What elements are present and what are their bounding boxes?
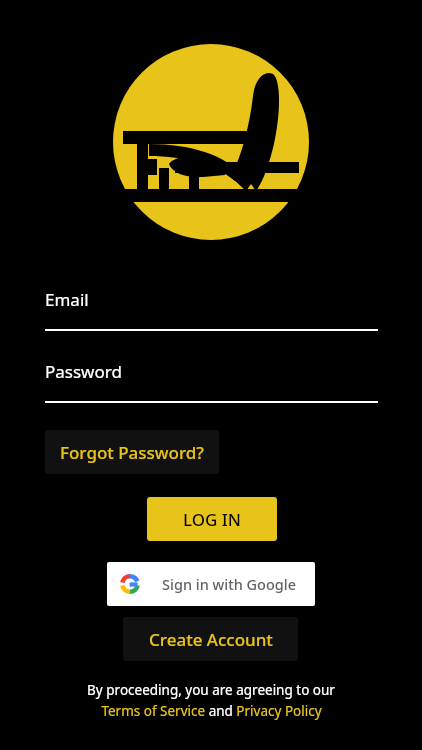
button[interactable]: Create Account [123, 617, 298, 661]
staticText: Sign in with Google [162, 574, 297, 594]
button[interactable]: LOG IN [147, 497, 277, 541]
staticText: Password [45, 360, 122, 383]
button[interactable]: Sign in with Google [107, 562, 315, 606]
button[interactable]: Forgot Password? [45, 430, 219, 474]
staticText: LOG IN [183, 508, 242, 531]
staticText: Create Account [149, 628, 273, 651]
button[interactable]: Password [45, 360, 378, 402]
button[interactable]: Terms of Service and Privacy Policy [101, 702, 322, 720]
button[interactable]: Email [45, 288, 378, 330]
staticText: By proceeding, you are agreeing to our [87, 681, 335, 699]
staticText: Forgot Password? [60, 441, 204, 464]
staticText: Email [45, 288, 89, 311]
other: App logo [113, 44, 309, 240]
